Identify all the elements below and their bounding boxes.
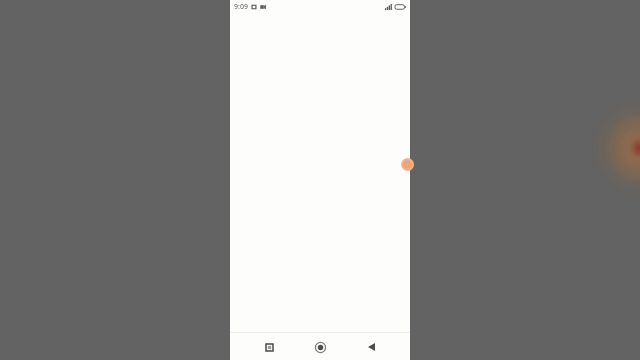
staticText: 9:09 (234, 2, 248, 12)
button[interactable]: Recent apps (257, 335, 281, 359)
button[interactable]: Home (308, 335, 332, 359)
button[interactable]: Accent bubble (401, 158, 414, 171)
button[interactable]: Back (359, 335, 383, 359)
